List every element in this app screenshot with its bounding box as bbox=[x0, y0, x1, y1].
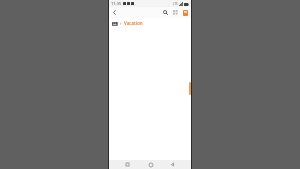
button[interactable]: Back bbox=[168, 160, 177, 169]
button[interactable]: Search bbox=[161, 8, 170, 17]
button[interactable]: Bookmarks bbox=[181, 8, 190, 17]
staticText: Vacation bbox=[124, 20, 143, 26]
button[interactable]: Recent apps bbox=[123, 160, 132, 169]
button[interactable]: Home bbox=[146, 160, 155, 169]
button[interactable]: › bbox=[109, 18, 191, 28]
staticText: › bbox=[120, 20, 122, 27]
staticText: LTE bbox=[173, 2, 178, 6]
button[interactable]: View options bbox=[171, 8, 180, 17]
button[interactable]: Back bbox=[110, 8, 119, 17]
staticText: 11:35 bbox=[111, 1, 122, 6]
